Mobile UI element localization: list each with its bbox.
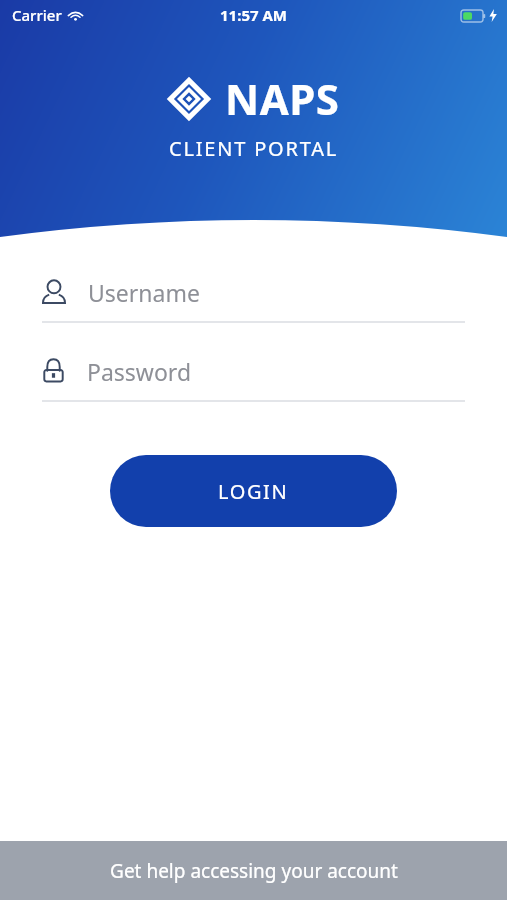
staticText: CLIENT PORTAL bbox=[169, 135, 339, 162]
staticText: Password bbox=[87, 356, 192, 387]
button[interactable]: Username bbox=[42, 272, 465, 323]
staticText: Carrier bbox=[12, 5, 62, 25]
staticText: Username bbox=[88, 277, 200, 308]
staticText: NAPS bbox=[225, 70, 340, 127]
staticText: Get help accessing your account bbox=[110, 858, 398, 884]
button[interactable]: LOGIN bbox=[110, 455, 397, 527]
button[interactable]: Password bbox=[42, 351, 465, 402]
other: Password bbox=[42, 358, 65, 384]
staticText: 11:57 AM bbox=[220, 5, 287, 25]
button[interactable]: Get help accessing your account bbox=[0, 841, 507, 900]
staticText: LOGIN bbox=[218, 478, 289, 505]
other: Username bbox=[42, 279, 66, 305]
